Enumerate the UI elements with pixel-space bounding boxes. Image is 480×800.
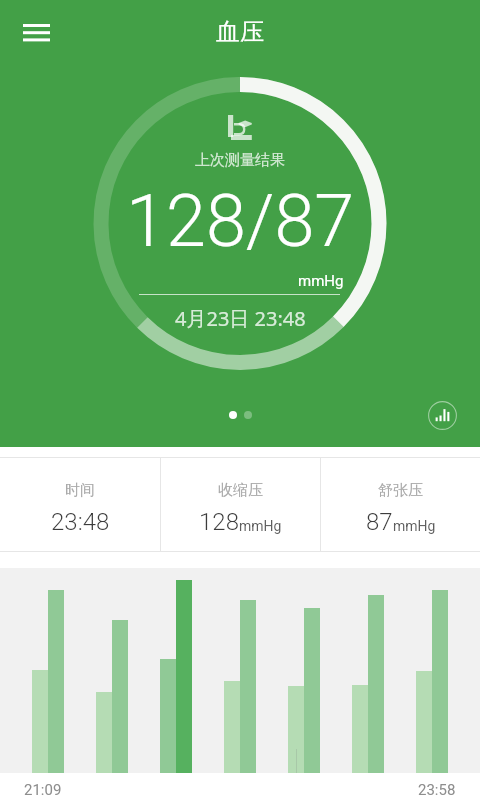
staticText: 128/87	[126, 179, 355, 263]
button[interactable]: 收缩压	[161, 458, 320, 552]
staticText: 4月23日 23:48	[175, 305, 306, 332]
staticText: 23:48	[51, 508, 110, 536]
staticText: mmHg	[393, 518, 436, 534]
staticText: 21:09	[24, 781, 62, 799]
staticText: 血压	[216, 17, 264, 47]
staticText: 128	[199, 508, 239, 536]
staticText: 舒张压	[378, 481, 423, 500]
staticText: mmHg	[298, 272, 344, 290]
staticText: 87	[366, 508, 393, 536]
button[interactable]: 舒张压	[321, 458, 480, 552]
button[interactable]: Open navigation menu	[12, 8, 60, 56]
staticText: 上次测量结果	[195, 151, 285, 170]
staticText: 23:58	[418, 781, 456, 799]
button[interactable]: 时间	[0, 458, 160, 552]
button[interactable]: View statistics	[421, 394, 464, 437]
staticText: mmHg	[239, 518, 282, 534]
staticText: 收缩压	[218, 481, 263, 500]
staticText: 时间	[65, 481, 95, 500]
